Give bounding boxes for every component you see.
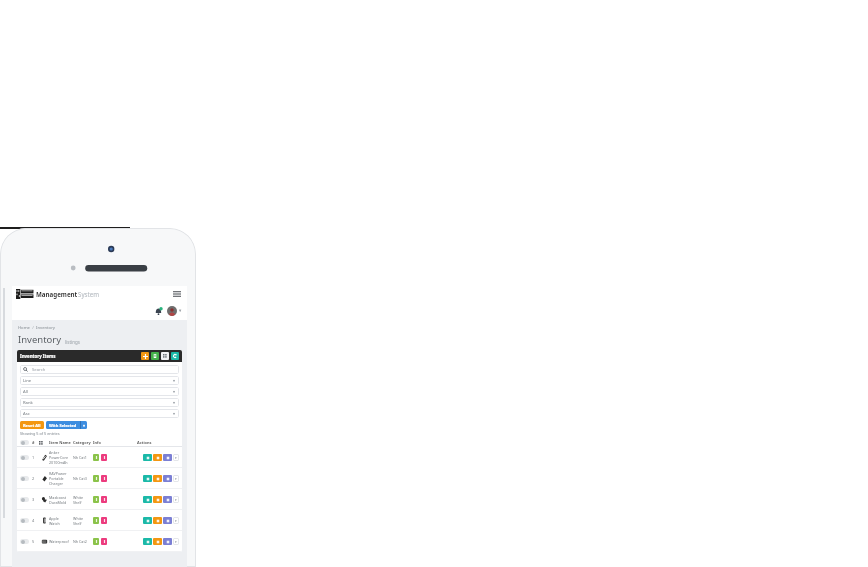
button[interactable]: Columns [161, 352, 169, 360]
button[interactable]: Info badge [101, 517, 107, 524]
button[interactable]: Info [163, 517, 172, 524]
button[interactable]: Export [151, 352, 159, 360]
button[interactable]: Asc [20, 409, 179, 418]
staticText: Anker PowerCore 20100mAh [49, 450, 68, 465]
staticText: Nh Cat2 [73, 539, 87, 544]
staticText: Category [73, 440, 91, 445]
staticText: 3 [32, 497, 35, 502]
staticText: ▾ [173, 389, 176, 394]
button[interactable]: Edit [143, 454, 152, 461]
staticText: Inventory [36, 325, 55, 331]
staticText: Showing 5 of 5 entries [20, 431, 60, 436]
button[interactable]: Info [163, 538, 172, 545]
button[interactable]: More [173, 517, 179, 524]
button[interactable]: Edit [143, 496, 152, 503]
staticText: ▾ [179, 308, 182, 313]
staticText: / [30, 325, 36, 331]
staticText: Home [18, 325, 30, 331]
button[interactable]: With Selected [46, 421, 87, 429]
button[interactable]: Account [167, 306, 177, 316]
button[interactable]: Info badge [93, 475, 99, 482]
staticText: 5 [32, 539, 35, 544]
staticText: Rank [23, 400, 33, 406]
staticText: ▾ [175, 540, 177, 544]
button[interactable]: More [173, 475, 179, 482]
button[interactable]: Info badge [93, 538, 99, 545]
button[interactable]: Notifications [152, 305, 164, 317]
button[interactable]: More [173, 538, 179, 545]
button[interactable]: Info badge [93, 454, 99, 461]
staticText: Search [32, 367, 46, 373]
button[interactable]: Chart [153, 454, 162, 461]
button[interactable]: Reset All [20, 421, 44, 429]
button[interactable]: Search [20, 365, 179, 374]
button[interactable]: Select row [20, 476, 29, 481]
staticText: Actions [137, 440, 152, 445]
button[interactable]: Chart [153, 538, 162, 545]
staticText: With Selected [49, 423, 77, 428]
staticText: RAVPower Portable Charger [49, 471, 67, 486]
staticText: All [23, 389, 28, 395]
button[interactable]: Select row [20, 497, 29, 502]
button[interactable]: Refresh [171, 352, 179, 360]
button[interactable]: More [173, 496, 179, 503]
staticText: ▾ [173, 400, 176, 405]
button[interactable]: Info [163, 475, 172, 482]
staticText: System [78, 290, 100, 298]
staticText: Reset All [23, 423, 41, 428]
button[interactable]: Edit [143, 475, 152, 482]
button[interactable]: Line [20, 376, 179, 385]
staticText: ▾ [175, 498, 177, 502]
button[interactable]: Info [163, 496, 172, 503]
staticText: ▾ [175, 519, 177, 523]
button[interactable]: Select row [20, 440, 29, 445]
button[interactable]: Add item [141, 352, 149, 360]
staticText: listings [65, 339, 80, 345]
staticText: ▾ [83, 423, 86, 428]
staticText: White Shelf [73, 516, 84, 526]
staticText: ▾ [175, 477, 177, 481]
button[interactable]: More [173, 454, 179, 461]
button[interactable]: Rank [20, 398, 179, 407]
button[interactable]: Chart [153, 496, 162, 503]
staticText: # [32, 440, 35, 445]
button[interactable]: Info badge [101, 538, 107, 545]
staticText: Info [93, 440, 101, 445]
button[interactable]: Info badge [101, 496, 107, 503]
staticText: Apple Watch [49, 516, 60, 526]
button[interactable]: All [20, 387, 179, 396]
button[interactable]: Info badge [93, 517, 99, 524]
staticText: Inventory [18, 333, 62, 346]
button[interactable]: Select row [20, 539, 29, 544]
button[interactable]: Select row [20, 455, 29, 460]
button[interactable]: Info [163, 454, 172, 461]
button[interactable]: Edit [143, 538, 152, 545]
staticText: Nh Cat3 [73, 476, 87, 481]
button[interactable]: Select row [20, 518, 29, 523]
staticText: White Shelf [73, 495, 84, 505]
staticText: Item Name [49, 440, 71, 445]
staticText: Asc [23, 411, 30, 417]
button[interactable]: Info badge [101, 475, 107, 482]
button[interactable]: Info badge [93, 496, 99, 503]
staticText: Line [23, 378, 32, 384]
staticText: 4 [32, 518, 35, 523]
staticText: ▾ [173, 378, 176, 383]
staticText: 1 [32, 455, 35, 460]
staticText: Inventory Items [20, 353, 56, 359]
staticText: ▾ [173, 411, 176, 416]
staticText: Maxboost DuraMold [49, 495, 67, 505]
staticText: 2 [32, 476, 35, 481]
button[interactable]: Info badge [101, 454, 107, 461]
button[interactable]: Chart [153, 475, 162, 482]
button[interactable]: Edit [143, 517, 152, 524]
staticText: Management [36, 290, 78, 298]
button[interactable]: Chart [153, 517, 162, 524]
staticText: Nh Cat1 [73, 455, 87, 460]
button[interactable]: Menu [171, 288, 183, 300]
staticText: ▾ [175, 456, 177, 460]
staticText: Waterproof [49, 539, 69, 544]
